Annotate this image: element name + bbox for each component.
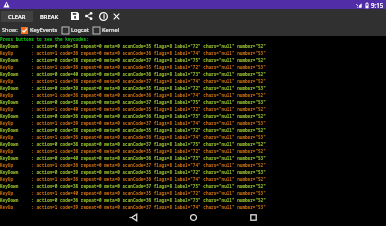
staticText: KeyUp : action=1 code=39 repeat=0 meta=0… — [0, 204, 266, 209]
staticText: KeyDown : action=0 code=38 repeat=0 meta… — [0, 141, 266, 147]
staticText: Press buttons to see the keycodes: — [0, 36, 89, 42]
staticText: KeyDown : action=0 code=38 repeat=0 meta… — [0, 43, 266, 49]
button[interactable]: CLEAR — [1, 11, 33, 22]
staticText: BREAK — [40, 13, 59, 21]
button[interactable]: Home — [183, 209, 203, 226]
staticText: KeyUp : action=1 code=39 repeat=0 meta=0… — [0, 120, 266, 126]
staticText: KeyUp : action=1 code=36 repeat=0 meta=0… — [0, 92, 266, 98]
staticText: KeyUp : action=1 code=36 repeat=0 meta=0… — [0, 78, 266, 84]
staticText: KeyDown : action=0 code=38 repeat=0 meta… — [0, 99, 266, 105]
button[interactable]: KeyEvents — [21, 26, 58, 34]
button[interactable]: Logcat — [62, 26, 89, 34]
button[interactable]: Back — [123, 209, 143, 226]
button[interactable]: BREAK — [33, 11, 65, 22]
button[interactable]: Share — [82, 9, 96, 23]
staticText: KeyEvents — [30, 26, 58, 34]
staticText: KeyUp : action=1 code=36 repeat=0 meta=0… — [0, 134, 266, 140]
staticText: KeyDown : action=0 code=40 repeat=0 meta… — [0, 155, 266, 161]
staticText: KeyDown : action=0 code=40 repeat=0 meta… — [0, 71, 266, 77]
staticText: KeyDown : action=0 code=38 repeat=0 meta… — [0, 183, 266, 189]
staticText: KeyUp : action=1 code=40 repeat=0 meta=0… — [0, 190, 266, 196]
staticText: KeyUp : action=1 code=36 repeat=0 meta=0… — [0, 64, 266, 70]
button[interactable]: Kernel — [93, 26, 120, 34]
staticText: KeyDown : action=0 code=39 repeat=0 meta… — [0, 169, 266, 175]
staticText: KeyDown : action=0 code=38 repeat=0 meta… — [0, 57, 266, 63]
button[interactable]: Close — [110, 10, 123, 23]
staticText: KeyDown : action=0 code=36 repeat=0 meta… — [0, 113, 266, 119]
staticText: KeyDown : action=0 code=39 repeat=0 meta… — [0, 85, 266, 91]
staticText: Kernel — [102, 26, 120, 34]
staticText: 9:15 — [371, 1, 384, 9]
staticText: KeyDown : action=0 code=38 repeat=0 meta… — [0, 127, 266, 133]
staticText: KeyUp : action=1 code=36 repeat=0 meta=0… — [0, 176, 266, 182]
staticText: KeyUp : action=1 code=36 repeat=0 meta=0… — [0, 50, 266, 56]
staticText: KeyUp : action=1 code=36 repeat=0 meta=0… — [0, 148, 266, 154]
staticText: KeyUp : action=1 code=36 repeat=0 meta=0… — [0, 162, 266, 168]
button[interactable]: Recents — [243, 209, 263, 226]
button[interactable]: Info — [96, 9, 110, 23]
staticText: KeyDown : action=0 code=36 repeat=0 meta… — [0, 197, 266, 203]
staticText: Logcat — [71, 26, 89, 34]
staticText: Show: — [2, 26, 18, 34]
button[interactable]: Save — [68, 9, 82, 23]
staticText: KeyUp : action=1 code=40 repeat=0 meta=0… — [0, 106, 266, 112]
staticText: CLEAR — [8, 13, 26, 21]
